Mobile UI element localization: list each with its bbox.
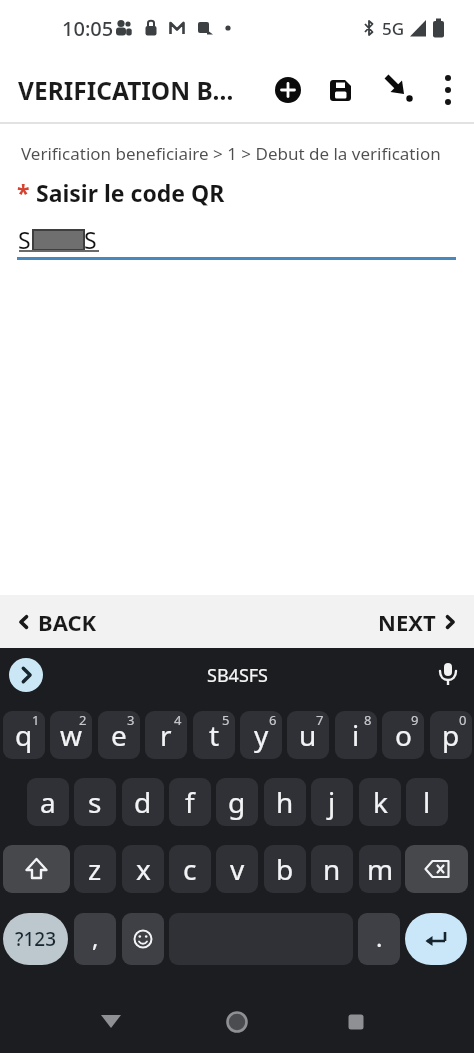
button[interactable]: NEXT	[378, 607, 457, 637]
staticText: r	[160, 716, 172, 754]
staticText: o	[395, 716, 412, 754]
button[interactable]	[122, 913, 164, 965]
staticText: ?123	[15, 926, 57, 952]
button[interactable]	[3, 845, 70, 893]
staticText: i	[352, 716, 360, 754]
staticText: S	[18, 224, 31, 255]
staticText: c	[183, 850, 197, 888]
button[interactable]	[99, 1012, 123, 1032]
button[interactable]: g	[216, 778, 258, 826]
button[interactable]: i	[335, 711, 377, 759]
staticText: Verification beneficiaire > 1 > Debut de…	[21, 142, 441, 165]
button[interactable]	[328, 78, 353, 103]
button[interactable]: p	[430, 711, 472, 759]
staticText: j	[328, 783, 336, 821]
staticText: 4	[174, 711, 182, 729]
button[interactable]: e	[98, 711, 140, 759]
button[interactable]	[436, 661, 460, 689]
button[interactable]: o	[382, 711, 424, 759]
button[interactable]: d	[122, 778, 164, 826]
staticText: 5G	[382, 17, 405, 40]
staticText: NEXT	[378, 607, 436, 637]
button[interactable]: k	[359, 778, 401, 826]
button[interactable]: BACK	[17, 607, 97, 637]
staticText: u	[299, 716, 317, 754]
staticText: 8	[364, 711, 372, 729]
staticText: SB4SFS	[207, 663, 268, 688]
button[interactable]: x	[122, 845, 164, 893]
button[interactable]: ,	[74, 913, 116, 965]
staticText: q	[15, 716, 33, 754]
button[interactable]: q	[3, 711, 45, 759]
staticText: BACK	[38, 607, 97, 637]
button[interactable]: ?123	[3, 913, 68, 965]
button[interactable]	[382, 72, 416, 106]
staticText: S	[84, 224, 97, 255]
button[interactable]: b	[264, 845, 306, 893]
staticText: a	[40, 783, 56, 821]
button[interactable]: .	[358, 913, 400, 965]
staticText: p	[442, 716, 460, 754]
button[interactable]: n	[311, 845, 353, 893]
staticText: z	[88, 850, 102, 888]
button[interactable]: u	[287, 711, 329, 759]
staticText: n	[323, 850, 341, 888]
staticText: m	[367, 850, 394, 888]
staticText: b	[276, 850, 294, 888]
staticText: 9	[411, 711, 419, 729]
button[interactable]: h	[264, 778, 306, 826]
button[interactable]: v	[216, 845, 258, 893]
staticText: 0	[459, 711, 467, 729]
button[interactable]: j	[311, 778, 353, 826]
staticText: y	[254, 716, 269, 754]
button[interactable]	[405, 913, 467, 965]
button[interactable]: t	[193, 711, 235, 759]
staticText: ,	[92, 921, 99, 954]
button[interactable]	[344, 1010, 368, 1034]
staticText: 3	[127, 711, 135, 729]
staticText: 10:05	[62, 15, 114, 42]
button[interactable]	[225, 1010, 249, 1034]
button[interactable]	[405, 845, 468, 893]
staticText: 6	[269, 711, 277, 729]
button[interactable]	[275, 77, 301, 103]
button[interactable]: c	[169, 845, 211, 893]
button[interactable]: s	[74, 778, 116, 826]
button[interactable]: w	[50, 711, 92, 759]
staticText: .	[376, 921, 383, 954]
staticText: 7	[316, 711, 324, 729]
button[interactable]: y	[240, 711, 282, 759]
button[interactable]: a	[27, 778, 69, 826]
button[interactable]: l	[406, 778, 448, 826]
staticText: 5	[222, 711, 230, 729]
staticText: l	[423, 783, 431, 821]
staticText: g	[228, 783, 246, 821]
staticText: k	[373, 783, 388, 821]
button[interactable]	[9, 658, 43, 692]
staticText: s	[88, 783, 102, 821]
staticText: VERIFICATION B…	[18, 74, 234, 107]
staticText: h	[276, 783, 294, 821]
staticText: *	[17, 177, 36, 208]
button[interactable]: f	[169, 778, 211, 826]
staticText: w	[60, 716, 83, 754]
staticText: d	[134, 783, 152, 821]
button[interactable]: m	[359, 845, 401, 893]
staticText: x	[136, 850, 151, 888]
button[interactable]: z	[74, 845, 116, 893]
staticText: Saisir le code QR	[36, 177, 225, 208]
staticText: e	[111, 716, 127, 754]
button[interactable]	[436, 66, 460, 114]
staticText: 2	[79, 711, 87, 729]
staticText: v	[230, 850, 245, 888]
staticText: t	[209, 716, 220, 754]
staticText: f	[185, 783, 195, 821]
staticText: 1	[32, 711, 40, 729]
button[interactable]: r	[145, 711, 187, 759]
